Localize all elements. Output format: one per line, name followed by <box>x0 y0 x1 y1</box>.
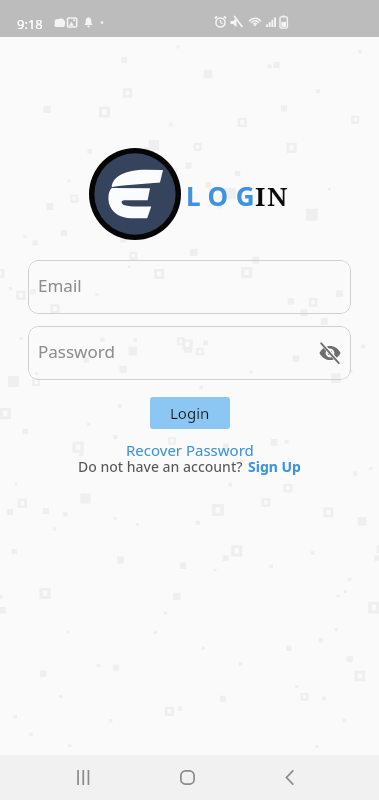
staticText: Email <box>38 274 82 297</box>
button[interactable]: Recents <box>61 755 105 800</box>
button[interactable]: Password <box>28 326 351 380</box>
staticText: 9:18 <box>17 15 43 33</box>
button[interactable]: Email <box>28 260 351 314</box>
staticText: Password <box>38 340 115 363</box>
button[interactable]: Login <box>150 397 230 429</box>
staticText: Login <box>170 403 210 423</box>
button[interactable]: Sign Up <box>248 457 301 476</box>
staticText: IN <box>255 178 290 213</box>
button[interactable]: Toggle password visibility <box>317 340 343 366</box>
button[interactable]: Recover Password <box>126 440 254 460</box>
button[interactable]: Back <box>267 755 311 800</box>
staticText: LOG <box>186 178 263 213</box>
button[interactable]: Home <box>165 755 209 800</box>
staticText: Do not have an account? <box>78 457 243 476</box>
